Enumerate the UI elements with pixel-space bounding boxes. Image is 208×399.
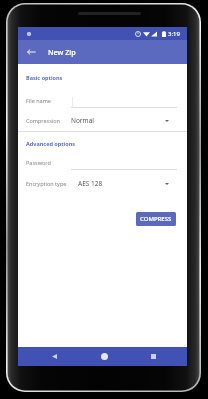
staticText: Advanced options [26, 140, 76, 147]
staticText: New Zip [48, 47, 76, 57]
staticText: Password [26, 159, 51, 166]
button[interactable]: Navigate up [21, 42, 41, 62]
button[interactable]: Back [44, 347, 64, 366]
button[interactable]: Home [94, 347, 114, 366]
button[interactable]: Recent apps [143, 347, 163, 366]
staticText: File name [26, 97, 51, 104]
staticText: Compression [26, 117, 61, 124]
staticText: AES 128 [78, 179, 103, 188]
button[interactable]: COMPRESS [136, 212, 176, 226]
staticText: 3:19 [168, 30, 180, 38]
staticText: Encryption type [26, 180, 67, 187]
staticText: Normal [71, 116, 94, 125]
staticText: COMPRESS [140, 215, 172, 223]
staticText: Basic options [26, 74, 63, 81]
